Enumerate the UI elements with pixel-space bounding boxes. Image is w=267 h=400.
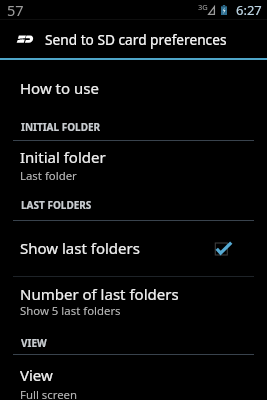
staticText: LAST FOLDERS	[21, 198, 92, 212]
staticText: INITIAL FOLDER	[21, 120, 101, 134]
staticText: 57	[7, 0, 24, 20]
staticText: 6:27	[236, 1, 262, 19]
staticText: Number of last folders	[20, 284, 179, 304]
other: App icon	[17, 35, 34, 43]
button[interactable]: Show last folders	[0, 221, 267, 276]
button[interactable]: Initial folder	[0, 141, 267, 191]
staticText: Last folder	[20, 168, 77, 184]
staticText: Show last folders	[20, 238, 140, 258]
button[interactable]: How to use	[0, 60, 267, 109]
staticText: Full screen	[20, 387, 78, 400]
staticText: Send to SD card preferences	[45, 30, 227, 49]
staticText: Show 5 last folders	[20, 303, 121, 319]
staticText: VIEW	[21, 336, 47, 350]
staticText: View	[20, 365, 53, 385]
staticText: Initial folder	[20, 147, 106, 167]
staticText: 3G	[198, 2, 208, 12]
staticText: How to use	[20, 78, 99, 98]
button[interactable]: View	[0, 355, 267, 400]
button[interactable]: Number of last folders	[0, 277, 267, 328]
button[interactable]: App icon	[0, 20, 267, 58]
